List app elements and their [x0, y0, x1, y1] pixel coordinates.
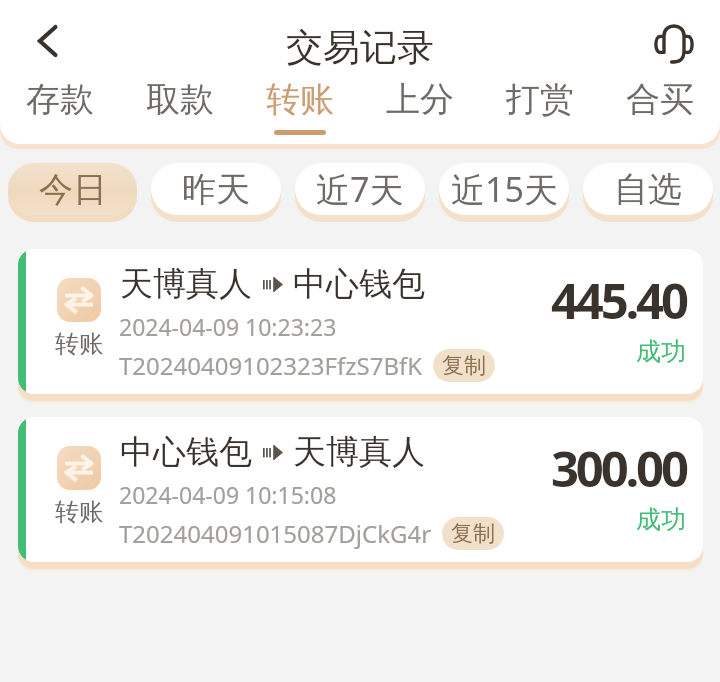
button[interactable]: 转账: [18, 417, 703, 562]
staticText: 成功: [636, 336, 686, 367]
staticText: 交易记录: [286, 24, 434, 71]
button[interactable]: 近15天: [439, 163, 569, 215]
staticText: 天博真人: [293, 431, 425, 473]
staticText: 中心钱包: [293, 263, 425, 305]
staticText: 转账: [55, 329, 103, 359]
button[interactable]: 取款: [120, 0, 240, 144]
staticText: 上分: [386, 78, 454, 121]
button[interactable]: 自选: [583, 163, 713, 215]
button[interactable]: 近7天: [295, 163, 425, 215]
staticText: 自选: [614, 168, 682, 211]
button[interactable]: 上分: [360, 0, 480, 144]
staticText: 近7天: [316, 166, 404, 212]
staticText: 打赏: [506, 78, 574, 121]
button[interactable]: 复制: [442, 517, 504, 550]
button[interactable]: Customer service: [636, 4, 712, 80]
staticText: 转账: [266, 78, 334, 121]
button[interactable]: 复制: [433, 349, 495, 382]
button[interactable]: 合买: [600, 0, 720, 144]
button[interactable]: 昨天: [151, 163, 281, 215]
button[interactable]: 转账: [18, 249, 703, 394]
button[interactable]: 打赏: [480, 0, 600, 144]
staticText: 中心钱包: [120, 431, 252, 473]
staticText: 成功: [636, 504, 686, 535]
staticText: 300.00: [551, 435, 686, 502]
button[interactable]: Back: [11, 3, 87, 79]
button[interactable]: 今日: [8, 163, 137, 215]
staticText: 合买: [626, 78, 694, 121]
staticText: 存款: [26, 78, 94, 121]
staticText: 近15天: [451, 166, 558, 212]
button[interactable]: 转账: [240, 0, 360, 144]
staticText: T202404091015087DjCkG4r: [119, 517, 432, 550]
staticText: 天博真人: [120, 263, 252, 305]
staticText: 取款: [146, 78, 214, 121]
staticText: 今日: [39, 168, 107, 211]
staticText: T20240409102323FfzS7BfK: [119, 349, 423, 382]
button[interactable]: 存款: [0, 0, 120, 144]
staticText: 复制: [442, 352, 486, 380]
staticText: 2024-04-09 10:15:08: [119, 479, 337, 510]
staticText: 445.40: [551, 267, 686, 334]
staticText: 2024-04-09 10:23:23: [119, 311, 337, 342]
staticText: 复制: [451, 520, 495, 548]
staticText: 昨天: [182, 168, 250, 211]
staticText: 转账: [55, 497, 103, 527]
